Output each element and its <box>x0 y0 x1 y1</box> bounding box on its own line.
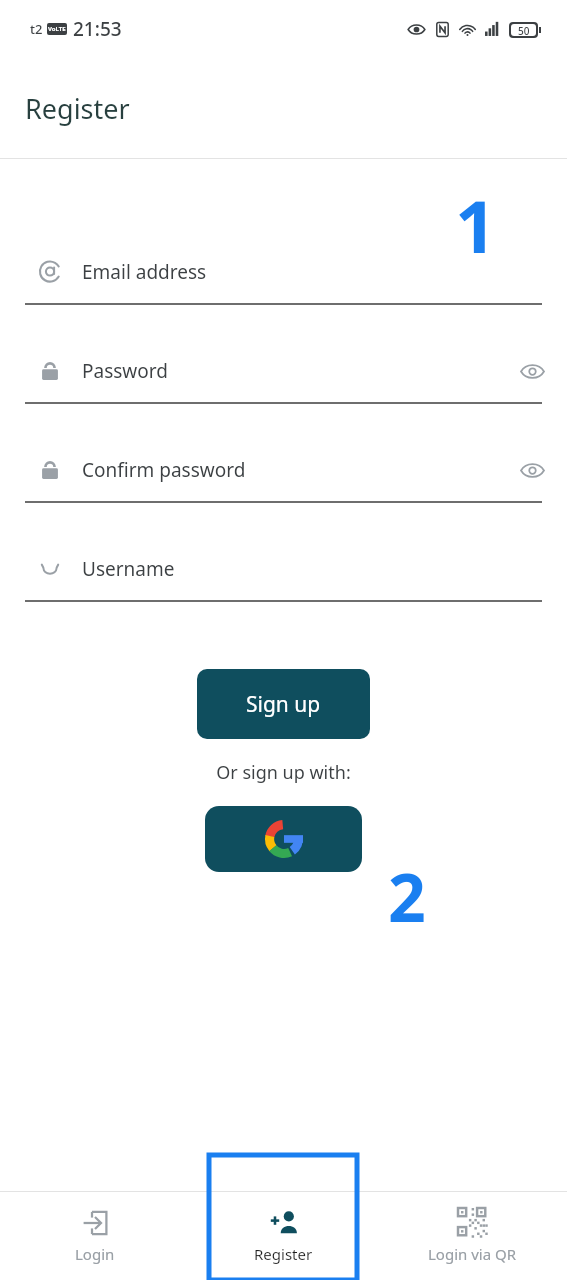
staticText: Register <box>254 1244 313 1264</box>
staticText: Username <box>82 556 175 582</box>
staticText: Sign up <box>246 690 321 719</box>
staticText: Confirm password <box>82 457 246 483</box>
button[interactable]: Username <box>0 538 567 637</box>
staticText: 1 <box>455 176 497 274</box>
button[interactable]: Sign up with Google <box>205 806 362 872</box>
staticText: Register <box>25 90 130 127</box>
button[interactable]: Password <box>0 340 567 439</box>
staticText: 21:53 <box>73 16 122 42</box>
button[interactable]: Register <box>189 1192 378 1280</box>
staticText: 2 <box>388 851 426 941</box>
staticText: Login via QR <box>428 1244 517 1264</box>
staticText: t2 <box>30 20 43 38</box>
button[interactable]: Confirm password <box>0 439 567 538</box>
button[interactable]: Show password <box>509 447 555 493</box>
staticText: Or sign up with: <box>0 760 567 785</box>
button[interactable]: Show password <box>509 348 555 394</box>
button[interactable]: Sign up <box>197 669 370 739</box>
staticText: VoLTE <box>48 25 66 33</box>
staticText: 50 <box>518 24 530 36</box>
staticText: Password <box>82 358 168 384</box>
staticText: Email address <box>82 259 207 285</box>
button[interactable]: Login <box>0 1192 189 1280</box>
staticText: Login <box>75 1244 115 1264</box>
button[interactable]: Login via QR <box>378 1192 567 1280</box>
button[interactable]: Email address <box>0 241 567 340</box>
